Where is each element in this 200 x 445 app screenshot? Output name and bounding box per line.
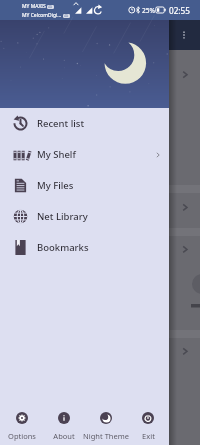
button[interactable]: Night Theme bbox=[85, 394, 127, 445]
staticText: 4G bbox=[48, 5, 53, 9]
staticText: Night Theme bbox=[83, 431, 129, 441]
staticText: 02:55 bbox=[169, 5, 190, 16]
button[interactable]: About bbox=[43, 394, 85, 445]
staticText: About bbox=[53, 431, 75, 441]
button[interactable]: More options bbox=[177, 28, 191, 42]
staticText: 4G bbox=[64, 14, 69, 18]
staticText: My Files bbox=[37, 179, 74, 192]
staticText: Bookmarks bbox=[37, 241, 89, 254]
staticText: MY CelcomDigi... bbox=[22, 12, 62, 19]
staticText: MY MAXIS bbox=[22, 3, 46, 10]
staticText: Recent list bbox=[37, 117, 85, 130]
button[interactable]: Exit bbox=[127, 394, 169, 445]
button[interactable]: Bookmarks bbox=[0, 232, 169, 263]
button[interactable]: My Shelf bbox=[0, 139, 169, 170]
staticText: Exit bbox=[142, 431, 155, 441]
staticText: Options bbox=[8, 431, 36, 441]
button[interactable]: Options bbox=[0, 394, 43, 445]
staticText: My Shelf bbox=[37, 148, 76, 161]
staticText: 25% bbox=[142, 6, 156, 15]
button[interactable]: Recent list bbox=[0, 108, 169, 139]
button[interactable]: My Files bbox=[0, 170, 169, 201]
staticText: Net Library bbox=[37, 210, 88, 223]
button[interactable]: Net Library bbox=[0, 201, 169, 232]
